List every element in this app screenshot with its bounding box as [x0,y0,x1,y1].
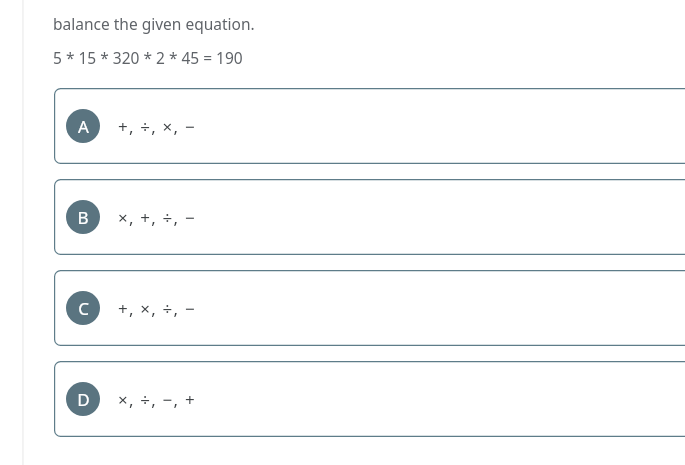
staticText: ×, +, ÷, − [118,206,196,229]
staticText: +, ÷, ×, − [118,115,196,138]
staticText: 5 * 15 * 320 * 2 * 45 = 190 [53,47,243,68]
staticText: A [78,115,89,138]
button[interactable]: B [54,179,685,255]
button[interactable]: D [54,361,685,437]
button[interactable]: A [54,88,685,164]
staticText: balance the given equation. [53,13,255,34]
staticText: +, ×, ÷, − [118,297,196,320]
staticText: B [77,206,89,229]
staticText: C [78,297,89,320]
staticText: D [77,388,90,411]
button[interactable]: C [54,270,685,346]
staticText: ×, ÷, −, + [118,388,196,411]
